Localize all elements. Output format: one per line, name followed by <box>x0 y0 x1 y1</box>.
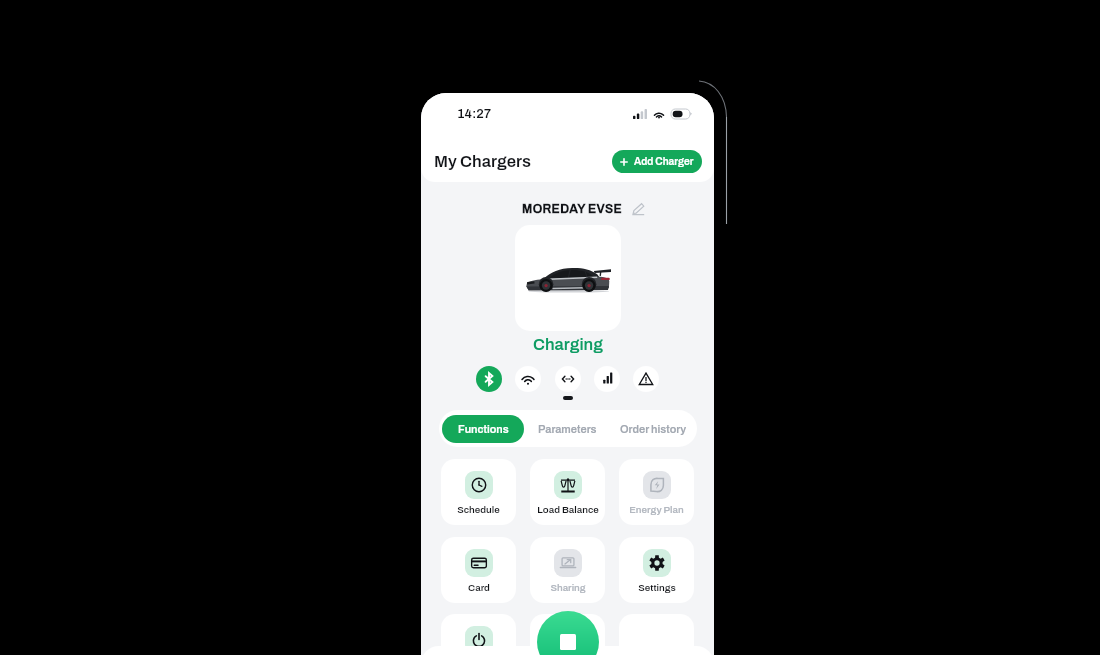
button[interactable]: Power <box>441 614 516 655</box>
button[interactable]: Wi-Fi <box>515 366 541 392</box>
button[interactable]: Functions <box>442 415 524 443</box>
staticText: Energy Plan <box>629 504 684 515</box>
staticText: Schedule <box>457 504 500 515</box>
staticText: My Chargers <box>434 152 532 170</box>
staticText: 14:27 <box>457 107 492 121</box>
button[interactable]: Schedule <box>441 459 516 525</box>
staticText: Load Balance <box>537 504 599 515</box>
staticText: Settings <box>638 582 676 593</box>
button[interactable]: Alerts <box>633 366 659 392</box>
button[interactable]: Bluetooth <box>476 366 502 392</box>
button[interactable]: Settings <box>619 537 694 603</box>
button[interactable]: Order history <box>610 410 697 447</box>
staticText: Functions <box>458 423 509 435</box>
button[interactable]: Load Balance <box>530 459 605 525</box>
staticText: MOREDAY EVSE <box>522 202 623 215</box>
staticText: Card <box>468 582 490 593</box>
staticText: Parameters <box>538 423 597 435</box>
staticText: Charging <box>533 336 603 354</box>
button[interactable]: Sharing <box>530 537 605 603</box>
button[interactable]: Add Charger <box>612 150 702 173</box>
button[interactable]: Cellular <box>594 366 620 392</box>
button[interactable]: Ethernet <box>555 366 581 392</box>
staticText: Add Charger <box>634 156 694 167</box>
staticText: Sharing <box>550 582 586 593</box>
button[interactable] <box>530 614 605 655</box>
button[interactable]: Parameters <box>524 410 610 447</box>
button[interactable]: Rename charger <box>632 203 644 215</box>
button[interactable]: Stop charging <box>537 611 599 655</box>
button[interactable]: Card <box>441 537 516 603</box>
staticText: Order history <box>620 423 687 435</box>
button[interactable]: Energy Plan <box>619 459 694 525</box>
